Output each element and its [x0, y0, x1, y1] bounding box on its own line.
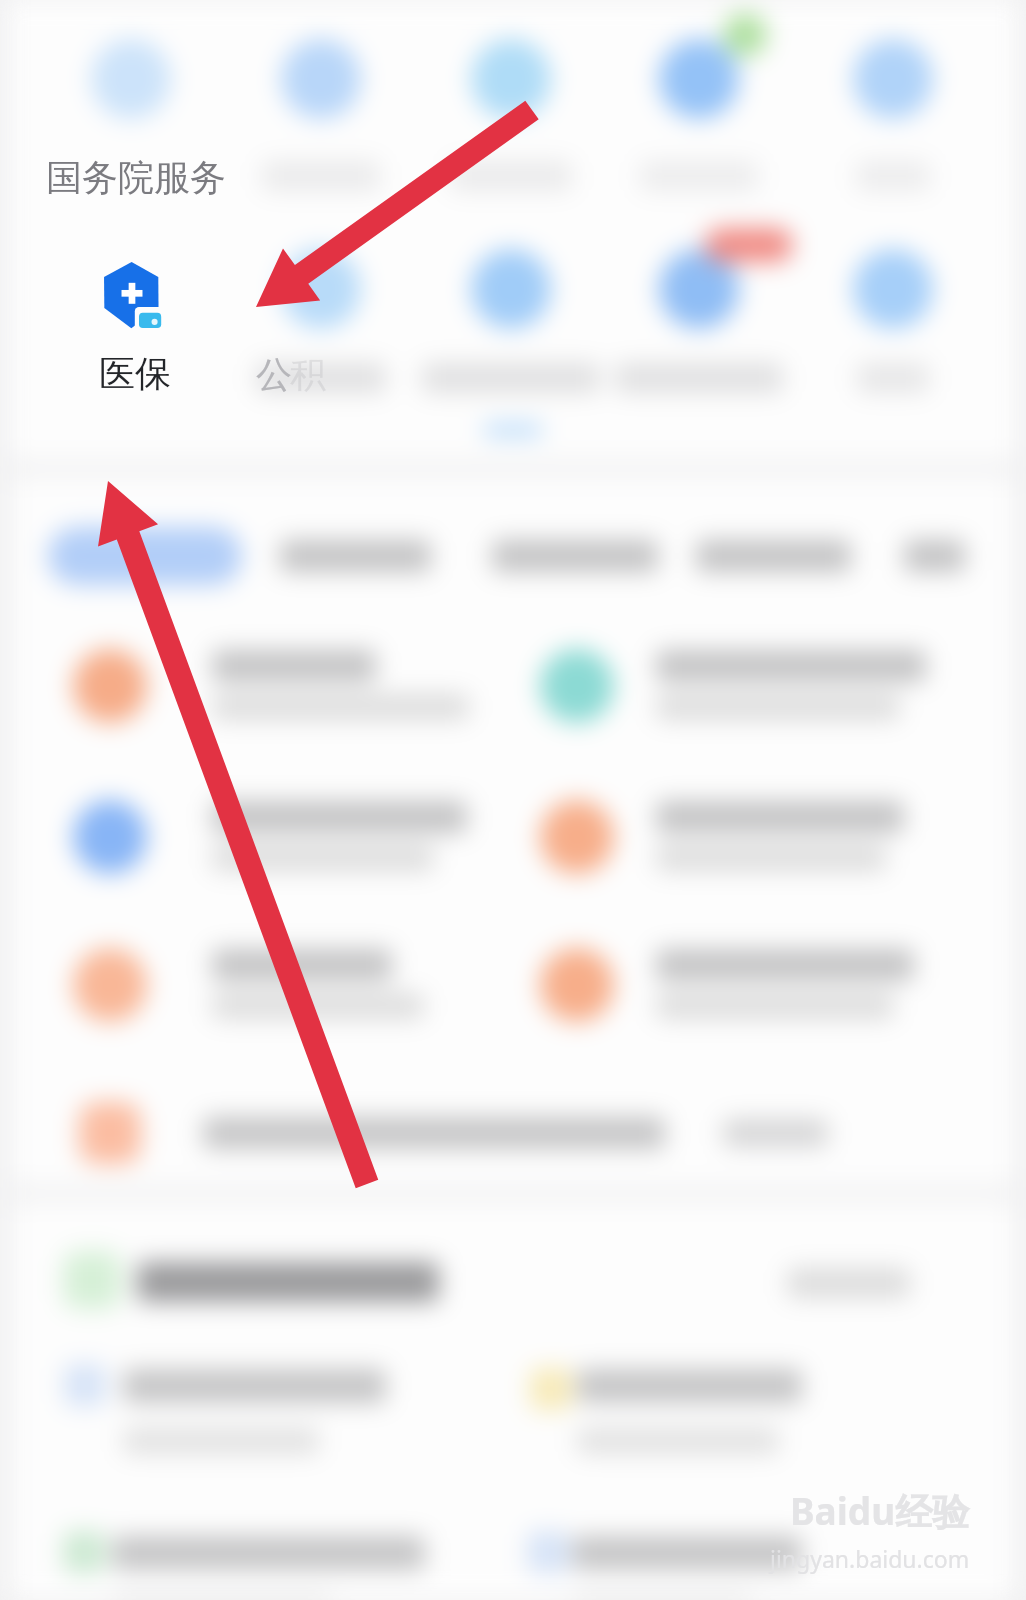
button[interactable]: 推荐 [48, 528, 241, 586]
button[interactable]: 社保查询 个人账户 [524, 785, 974, 889]
staticText: jingyan.baidu.com [770, 1543, 970, 1574]
button[interactable]: 生活服务 [696, 528, 851, 586]
button[interactable]: 更多 [803, 227, 983, 387]
button[interactable]: 个税 [421, 17, 601, 177]
button[interactable]: 养老金 [421, 227, 601, 387]
button[interactable]: 资讯四 [524, 1505, 964, 1600]
staticText: 公 [256, 352, 292, 397]
button[interactable]: 医保 [41, 227, 221, 387]
button[interactable]: 公积金 [231, 17, 411, 177]
button[interactable]: 办事大厅 在线办理 [60, 785, 510, 889]
staticText: Baidu经验 [790, 1485, 970, 1536]
button[interactable]: 资讯三 [60, 1505, 500, 1600]
button[interactable]: 便民 [280, 528, 431, 586]
button[interactable]: 电子证照 [803, 17, 983, 177]
button[interactable]: 更多 [904, 528, 965, 586]
button[interactable]: 资讯二 [524, 1340, 964, 1435]
button[interactable]: 资讯一 [60, 1340, 500, 1435]
button[interactable]: 公积金查询 [231, 227, 411, 387]
button[interactable]: 生活缴费 水电煤气 [524, 634, 974, 738]
button[interactable]: 活动横幅 [60, 1096, 960, 1182]
button[interactable]: 出入境办理 [609, 227, 789, 387]
button[interactable]: 政务 [492, 528, 658, 586]
other: 医保 [94, 256, 170, 332]
button[interactable]: 交通出行 公交地铁 [524, 936, 974, 1040]
staticText: 国务院服务 [46, 155, 226, 200]
button[interactable]: 医保 [58, 256, 206, 396]
button[interactable]: 税务服务 电子发票 [60, 936, 510, 1040]
button[interactable]: 社保 [41, 17, 221, 177]
staticText: 积 [290, 352, 326, 397]
button[interactable]: 政务服务 市民中心 [60, 634, 510, 738]
staticText: 医保 [99, 351, 171, 396]
button[interactable]: 交管12123 [609, 17, 789, 177]
button[interactable]: 资讯头条 [50, 1240, 950, 1320]
